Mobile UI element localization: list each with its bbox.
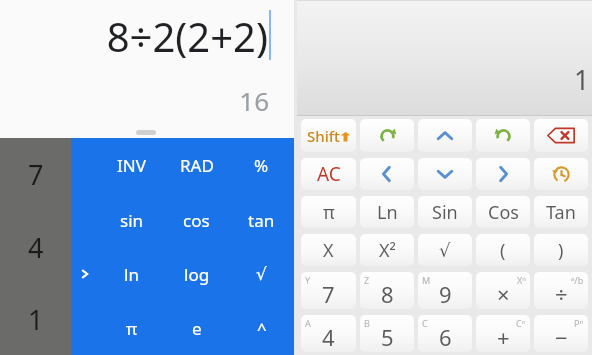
button[interactable]: Xⁿ — [476, 272, 530, 309]
staticText: B — [364, 317, 370, 329]
staticText: Y — [305, 274, 311, 286]
button[interactable]: 4 — [0, 211, 71, 283]
staticText: ᵃ/b — [571, 274, 584, 286]
button[interactable]: sin — [99, 193, 164, 247]
button[interactable]: Redo — [360, 119, 414, 152]
staticText: Tan — [546, 200, 576, 225]
button[interactable]: Expand pad — [71, 247, 99, 301]
staticText: Shift — [307, 126, 340, 146]
button[interactable]: Left — [360, 158, 414, 190]
staticText: ÷ — [555, 279, 568, 309]
staticText: 6 — [439, 322, 452, 352]
button[interactable]: π — [301, 196, 356, 228]
staticText: M — [422, 274, 431, 286]
button[interactable]: √ — [418, 234, 472, 266]
button[interactable]: ln — [99, 247, 164, 301]
staticText: INV — [117, 154, 146, 177]
button[interactable]: Z — [360, 272, 414, 309]
button[interactable]: B — [360, 315, 414, 352]
staticText: Cos — [488, 200, 519, 225]
button[interactable]: Sin — [418, 196, 472, 228]
staticText: ^ — [257, 317, 267, 340]
staticText: X — [323, 238, 334, 263]
button[interactable]: Tan — [534, 196, 588, 228]
staticText: C — [422, 317, 428, 329]
staticText: × — [497, 279, 510, 309]
button[interactable]: ^ — [229, 301, 294, 355]
staticText: e — [192, 317, 202, 340]
button[interactable]: Cⁿ — [476, 315, 530, 352]
button[interactable]: AC — [301, 158, 356, 190]
button[interactable]: C — [418, 315, 472, 352]
staticText: 1 — [28, 301, 44, 338]
staticText: Cⁿ — [516, 317, 526, 329]
button[interactable]: Down — [418, 158, 472, 190]
button[interactable]: INV — [99, 138, 164, 193]
staticText: sin — [120, 209, 144, 232]
staticText: Z — [364, 274, 370, 286]
button[interactable]: Shift — [301, 119, 356, 152]
staticText: Ln — [377, 200, 398, 225]
staticText: 16 — [239, 83, 269, 118]
button[interactable]: cos — [164, 193, 229, 247]
staticText: 9 — [439, 279, 452, 309]
staticText: √ — [439, 240, 451, 261]
staticText: 4 — [322, 322, 335, 352]
staticText: π — [126, 317, 138, 340]
staticText: tan — [248, 209, 275, 232]
button[interactable]: tan — [229, 193, 294, 247]
button[interactable]: 7 — [0, 138, 71, 211]
staticText: √ — [256, 264, 267, 284]
button[interactable] — [136, 130, 156, 135]
button[interactable]: RAD — [164, 138, 229, 193]
button[interactable]: History — [534, 158, 588, 190]
staticText: RAD — [180, 154, 214, 177]
button[interactable]: 1 — [0, 283, 71, 355]
button[interactable]: M — [418, 272, 472, 309]
button[interactable]: π — [99, 301, 164, 355]
staticText: ln — [124, 263, 139, 286]
staticText: A — [305, 317, 311, 329]
staticText: 1 — [574, 61, 590, 98]
button[interactable]: log — [164, 247, 229, 301]
button[interactable]: Backspace — [534, 119, 588, 152]
button[interactable]: √ — [229, 247, 294, 301]
staticText: cos — [183, 209, 210, 232]
button[interactable]: ( — [476, 234, 530, 266]
staticText: 8 — [381, 279, 394, 309]
staticText: 4 — [28, 229, 44, 266]
button[interactable]: Y — [301, 272, 356, 309]
button[interactable]: ᵃ/b — [534, 272, 588, 309]
staticText: ) — [558, 238, 564, 263]
staticText: Sin — [432, 200, 458, 225]
button[interactable]: Undo — [476, 119, 530, 152]
staticText: − — [555, 322, 568, 352]
staticText: % — [254, 154, 269, 177]
staticText: 8÷2(2+2) — [106, 9, 268, 63]
button[interactable]: Cos — [476, 196, 530, 228]
staticText: log — [184, 263, 210, 286]
button[interactable]: X — [301, 234, 356, 266]
button[interactable]: Up — [418, 119, 472, 152]
staticText: AC — [317, 161, 341, 187]
staticText: + — [497, 322, 510, 352]
button[interactable]: X² — [360, 234, 414, 266]
staticText: Pⁿ — [574, 317, 584, 329]
button[interactable]: e — [164, 301, 229, 355]
button[interactable]: % — [229, 138, 294, 193]
button[interactable]: Pⁿ — [534, 315, 588, 352]
staticText: 7 — [28, 156, 44, 193]
button[interactable]: A — [301, 315, 356, 352]
staticText: π — [323, 200, 335, 225]
button[interactable]: Ln — [360, 196, 414, 228]
staticText: X² — [379, 238, 396, 263]
staticText: 5 — [381, 322, 394, 352]
button[interactable]: Right — [476, 158, 530, 190]
staticText: 7 — [322, 279, 335, 309]
button[interactable]: ) — [534, 234, 588, 266]
staticText: Xⁿ — [517, 274, 526, 286]
staticText: ( — [500, 238, 506, 263]
